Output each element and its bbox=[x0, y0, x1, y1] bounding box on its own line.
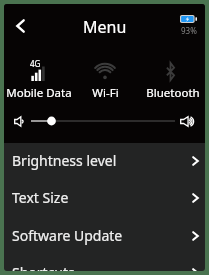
button[interactable]: Shortcuts bbox=[4, 255, 205, 271]
staticText: 4G bbox=[30, 58, 41, 69]
staticText: Menu bbox=[83, 16, 127, 38]
staticText: Mobile Data bbox=[6, 85, 72, 101]
staticText: Wi-Fi bbox=[92, 85, 119, 101]
staticText: Text Size bbox=[12, 188, 69, 207]
button[interactable]: Wi-Fi bbox=[72, 56, 139, 101]
button[interactable]: Text Size bbox=[4, 180, 205, 217]
staticText: 93% bbox=[181, 25, 197, 36]
button[interactable]: Brightness level bbox=[4, 143, 205, 180]
button[interactable]: Back bbox=[4, 10, 36, 42]
button[interactable]: Bluetooth bbox=[139, 56, 205, 101]
staticText: Shortcuts bbox=[12, 263, 75, 271]
button[interactable]: 4G bbox=[5, 56, 72, 101]
staticText: Bluetooth bbox=[146, 85, 200, 101]
button[interactable]: Software Update bbox=[4, 218, 205, 255]
staticText: Software Update bbox=[12, 226, 123, 245]
staticText: Brightness level bbox=[12, 151, 117, 170]
